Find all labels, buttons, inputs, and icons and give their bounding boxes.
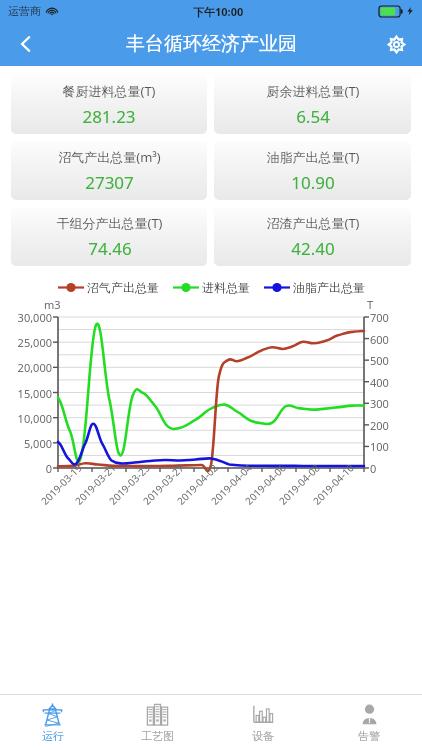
button[interactable]: Settings bbox=[376, 24, 416, 64]
staticText: 300 bbox=[370, 396, 389, 411]
staticText: 700 bbox=[370, 310, 389, 325]
button[interactable]: 运行 bbox=[0, 695, 105, 750]
staticText: 20,000 bbox=[17, 360, 52, 375]
button[interactable]: 干组分产出总量(T) bbox=[11, 207, 207, 266]
staticText: 工艺图 bbox=[141, 729, 174, 743]
button[interactable]: 告警 bbox=[316, 695, 422, 750]
staticText: 2019-04-04 bbox=[208, 460, 255, 508]
staticText: 设备 bbox=[252, 729, 274, 743]
staticText: T bbox=[367, 297, 374, 312]
staticText: 运行 bbox=[42, 729, 64, 743]
staticText: 400 bbox=[370, 375, 389, 390]
staticText: 2019-03-27 bbox=[140, 460, 187, 508]
staticText: 281.23 bbox=[82, 105, 136, 128]
staticText: 2019-04-08 bbox=[276, 460, 323, 508]
staticText: 0 bbox=[45, 461, 52, 476]
staticText: 油脂产出总量 bbox=[293, 280, 365, 295]
staticText: 丰台循环经济产业园 bbox=[126, 32, 297, 56]
button[interactable]: 设备 bbox=[210, 695, 316, 750]
staticText: 下午10:00 bbox=[193, 4, 244, 19]
button[interactable]: 厨余进料总量(T) bbox=[214, 75, 411, 134]
staticText: m3 bbox=[44, 297, 61, 312]
staticText: 沼渣产出总量(T) bbox=[266, 214, 360, 232]
staticText: 5,000 bbox=[23, 436, 52, 451]
staticText: 2019-03-23 bbox=[106, 460, 153, 508]
staticText: 30,000 bbox=[17, 310, 52, 325]
button[interactable]: Back bbox=[4, 22, 48, 66]
staticText: 2019-03-19 bbox=[38, 460, 85, 508]
staticText: 10,000 bbox=[17, 411, 52, 426]
staticText: 告警 bbox=[358, 729, 380, 743]
staticText: 油脂产出总量(T) bbox=[266, 148, 360, 166]
staticText: 进料总量 bbox=[202, 280, 250, 295]
staticText: 2019-04-06 bbox=[242, 460, 289, 508]
staticText: 干组分产出总量(T) bbox=[56, 214, 163, 232]
button[interactable]: 油脂产出总量(T) bbox=[214, 141, 411, 200]
staticText: 200 bbox=[370, 418, 389, 433]
staticText: 42.40 bbox=[291, 237, 335, 260]
staticText: 0 bbox=[370, 461, 377, 476]
staticText: 27307 bbox=[85, 171, 134, 194]
staticText: 74.46 bbox=[88, 237, 132, 260]
staticText: 运营商 bbox=[8, 4, 41, 18]
staticText: 6.54 bbox=[296, 105, 330, 128]
staticText: 600 bbox=[370, 332, 389, 347]
staticText: 餐厨进料总量(T) bbox=[62, 82, 156, 100]
staticText: 100 bbox=[370, 439, 389, 454]
staticText: 厨余进料总量(T) bbox=[266, 82, 360, 100]
staticText: 25,000 bbox=[17, 335, 52, 350]
button[interactable]: 工艺图 bbox=[105, 695, 210, 750]
staticText: 2019-04-10 bbox=[310, 460, 357, 508]
staticText: 10.90 bbox=[291, 171, 335, 194]
button[interactable]: 餐厨进料总量(T) bbox=[11, 75, 207, 134]
staticText: 15,000 bbox=[17, 386, 52, 401]
button[interactable]: 沼气产出总量(m³) bbox=[11, 141, 207, 200]
staticText: 2019-04-02 bbox=[174, 460, 221, 508]
staticText: 500 bbox=[370, 353, 389, 368]
staticText: 沼气产出总量 bbox=[87, 280, 159, 295]
button[interactable]: 沼渣产出总量(T) bbox=[214, 207, 411, 266]
staticText: 沼气产出总量(m³) bbox=[58, 148, 161, 166]
staticText: 2019-03-21 bbox=[72, 460, 119, 508]
